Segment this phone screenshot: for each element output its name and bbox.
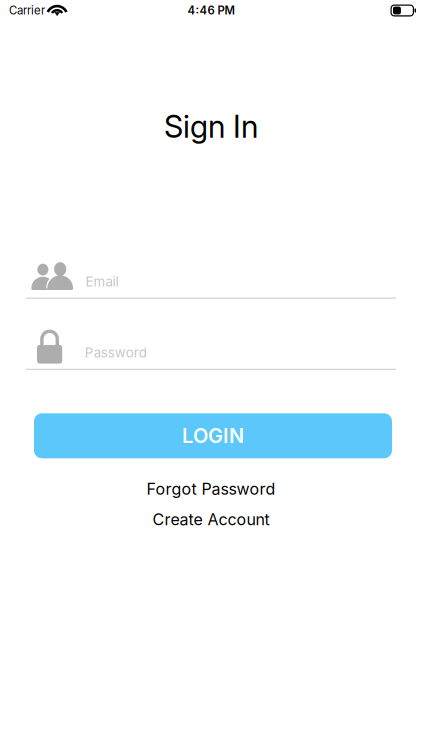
button[interactable]: Create Account (152, 510, 269, 529)
staticText: LOGIN (182, 424, 244, 448)
staticText: Create Account (152, 510, 269, 529)
staticText: Forgot Password (146, 479, 275, 499)
staticText: Password (85, 344, 147, 361)
button[interactable]: Forgot Password (146, 479, 275, 499)
staticText: Sign In (164, 108, 258, 145)
staticText: Email (86, 273, 119, 290)
staticText: 4:46 PM (187, 4, 234, 17)
button[interactable]: LOGIN (34, 413, 392, 458)
staticText: Carrier (9, 4, 45, 17)
